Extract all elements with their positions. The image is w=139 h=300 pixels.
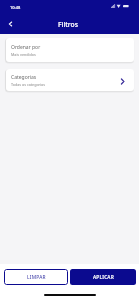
staticText: 10:48 [10,5,21,10]
staticText: Filtros [58,20,79,29]
staticText: Todas as categorias [11,82,45,87]
staticText: LIMPAR [27,274,46,281]
button[interactable]: Ordenar por [6,38,134,62]
staticText: Ordenar por [11,44,41,51]
staticText: Mais vendidos [11,52,36,57]
button[interactable]: Voltar [2,16,18,32]
button[interactable]: APLICAR [70,269,136,285]
button[interactable]: Categorias [6,69,134,91]
button[interactable]: LIMPAR [4,269,68,285]
staticText: APLICAR [93,274,114,281]
staticText: Categorias [11,74,37,81]
